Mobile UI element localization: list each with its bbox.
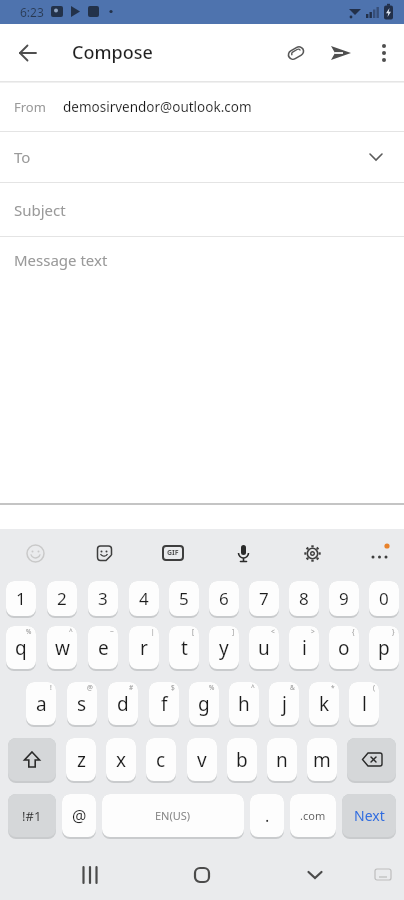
staticText: u bbox=[258, 635, 270, 661]
button[interactable] bbox=[364, 24, 404, 81]
staticText: 3 bbox=[98, 587, 108, 610]
button[interactable] bbox=[298, 529, 326, 577]
staticText: < bbox=[271, 627, 275, 636]
button[interactable]: k bbox=[309, 682, 339, 725]
button[interactable]: x bbox=[106, 738, 136, 781]
button[interactable] bbox=[178, 851, 226, 899]
staticText: Message text bbox=[14, 250, 108, 270]
button[interactable]: y bbox=[209, 626, 239, 669]
button[interactable]: 3 bbox=[88, 581, 118, 616]
staticText: v bbox=[197, 747, 207, 773]
button[interactable]: b bbox=[227, 738, 257, 781]
button[interactable]: o bbox=[329, 626, 359, 669]
button[interactable] bbox=[363, 855, 403, 895]
staticText: 9 bbox=[339, 587, 349, 610]
button[interactable] bbox=[291, 851, 339, 899]
button[interactable]: 5 bbox=[169, 581, 199, 616]
button[interactable]: e bbox=[88, 626, 118, 669]
button[interactable] bbox=[274, 24, 318, 81]
staticText: .com bbox=[300, 808, 326, 823]
button[interactable] bbox=[66, 851, 114, 899]
button[interactable]: Message text bbox=[0, 237, 404, 503]
button[interactable]: 1 bbox=[6, 581, 36, 616]
button[interactable]: t bbox=[169, 626, 199, 669]
button[interactable] bbox=[21, 529, 49, 577]
button[interactable]: @ bbox=[62, 794, 96, 837]
button[interactable]: m bbox=[307, 738, 337, 781]
button[interactable] bbox=[367, 529, 395, 577]
button[interactable] bbox=[8, 738, 56, 781]
button[interactable]: q bbox=[6, 626, 36, 669]
button[interactable]: g bbox=[189, 682, 219, 725]
button[interactable]: 2 bbox=[47, 581, 77, 616]
button[interactable]: . bbox=[250, 794, 284, 837]
button[interactable]: z bbox=[66, 738, 96, 781]
staticText: Subject bbox=[14, 200, 66, 220]
button[interactable]: n bbox=[267, 738, 297, 781]
button[interactable]: 4 bbox=[129, 581, 159, 616]
staticText: k bbox=[319, 691, 330, 717]
button[interactable]: w bbox=[47, 626, 77, 669]
button[interactable]: 9 bbox=[329, 581, 359, 616]
staticText: b bbox=[236, 747, 248, 773]
button[interactable]: u bbox=[249, 626, 279, 669]
button[interactable]: From bbox=[0, 83, 404, 131]
staticText: 6 bbox=[219, 587, 229, 610]
staticText: 0 bbox=[379, 587, 389, 610]
button[interactable]: j bbox=[269, 682, 299, 725]
button[interactable]: p bbox=[369, 626, 399, 669]
button[interactable]: !#1 bbox=[8, 794, 56, 837]
staticText: s bbox=[77, 691, 87, 717]
button[interactable]: Subject bbox=[0, 183, 404, 236]
staticText: p bbox=[378, 635, 390, 661]
button[interactable]: GIF bbox=[159, 529, 187, 577]
button[interactable]: s bbox=[67, 682, 97, 725]
button[interactable]: i bbox=[289, 626, 319, 669]
button[interactable]: h bbox=[229, 682, 259, 725]
staticText: y bbox=[219, 635, 229, 661]
button[interactable] bbox=[229, 529, 257, 577]
staticText: $ bbox=[171, 683, 175, 692]
staticText: @ bbox=[72, 805, 87, 827]
staticText: To bbox=[14, 147, 31, 167]
staticText: ( bbox=[373, 683, 375, 692]
staticText: c bbox=[156, 747, 166, 773]
button[interactable]: d bbox=[108, 682, 138, 725]
staticText: } bbox=[392, 627, 395, 636]
button[interactable]: 0 bbox=[369, 581, 399, 616]
staticText: Compose bbox=[72, 40, 153, 65]
button[interactable]: To bbox=[0, 132, 404, 182]
staticText: EN(US) bbox=[155, 808, 191, 823]
button[interactable] bbox=[318, 24, 364, 81]
button[interactable]: 8 bbox=[289, 581, 319, 616]
button[interactable] bbox=[90, 529, 118, 577]
staticText: r bbox=[140, 635, 148, 661]
button[interactable]: f bbox=[149, 682, 179, 725]
button[interactable]: a bbox=[26, 682, 56, 725]
staticText: i bbox=[302, 635, 307, 661]
staticText: g bbox=[198, 691, 210, 717]
button[interactable]: c bbox=[146, 738, 176, 781]
staticText: 1 bbox=[16, 587, 26, 610]
button[interactable]: .com bbox=[290, 794, 336, 837]
button[interactable]: l bbox=[349, 682, 379, 725]
staticText: ! bbox=[50, 683, 52, 692]
button[interactable]: EN(US) bbox=[102, 794, 244, 837]
staticText: n bbox=[276, 747, 288, 773]
staticText: ^ bbox=[69, 627, 73, 636]
staticText: | bbox=[151, 627, 155, 636]
staticText: z bbox=[77, 747, 86, 773]
button[interactable]: v bbox=[187, 738, 217, 781]
staticText: l bbox=[362, 691, 367, 717]
button[interactable]: 7 bbox=[249, 581, 279, 616]
button[interactable]: r bbox=[129, 626, 159, 669]
staticText: f bbox=[161, 691, 168, 717]
staticText: 5 bbox=[179, 587, 189, 610]
button[interactable] bbox=[347, 738, 396, 781]
staticText: [ bbox=[192, 627, 195, 636]
staticText: GIF bbox=[167, 548, 179, 558]
button[interactable]: 6 bbox=[209, 581, 239, 616]
button[interactable] bbox=[0, 24, 56, 81]
staticText: 7 bbox=[259, 587, 269, 610]
button[interactable]: Next bbox=[342, 794, 396, 837]
